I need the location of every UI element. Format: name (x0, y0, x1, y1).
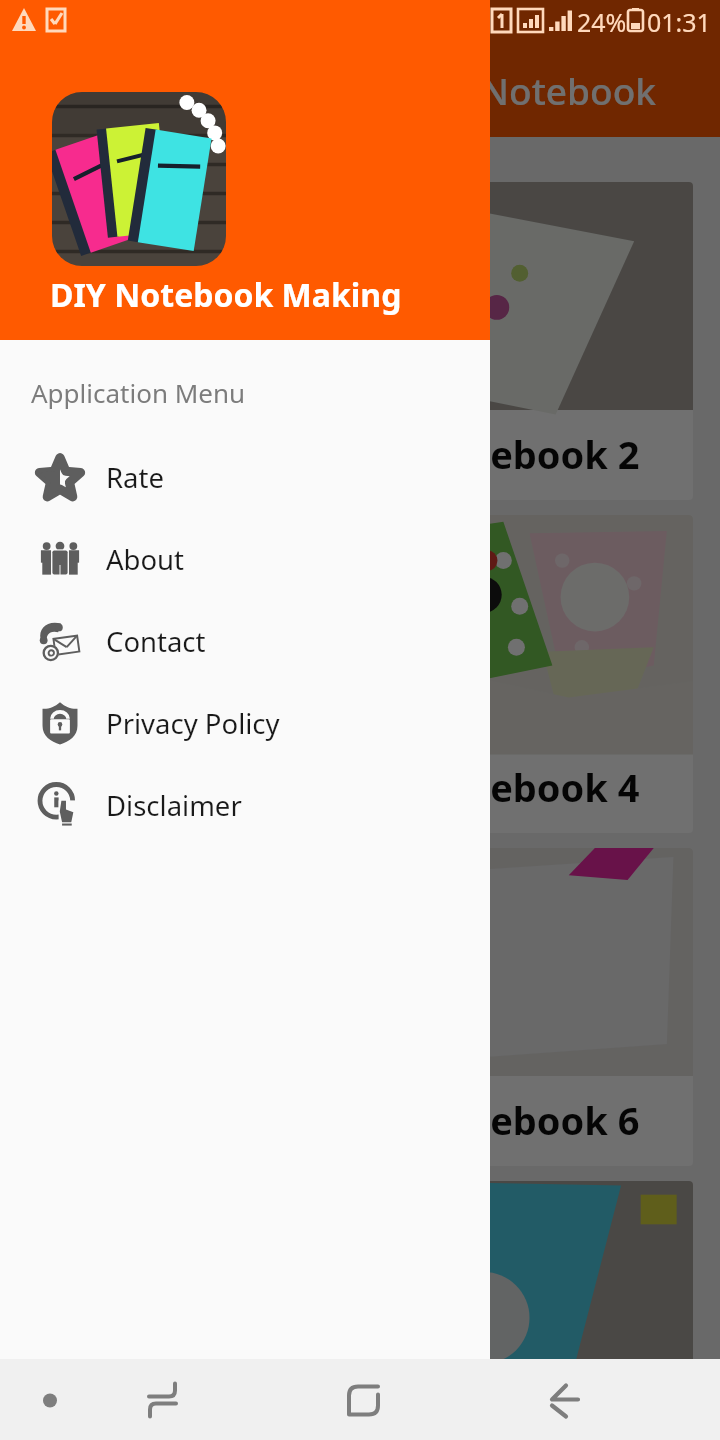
button[interactable]: Notebook 4 (366, 515, 693, 833)
button[interactable]: Notebook 2 (366, 182, 693, 500)
staticText: Application Menu (31, 375, 246, 410)
staticText: 01:31 (647, 5, 711, 39)
staticText: Contact (106, 623, 206, 660)
button[interactable]: About (0, 518, 490, 600)
button[interactable]: Disclaimer (0, 764, 490, 846)
staticText: Rate (106, 459, 164, 496)
button[interactable]: Notebook 7 (27, 1181, 353, 1440)
staticText: Notebook 4 (419, 761, 640, 813)
button[interactable]: Notebook 1 (27, 182, 353, 500)
button[interactable]: Menu (0, 1359, 100, 1440)
staticText: 24% (577, 5, 627, 39)
button[interactable]: Back (500, 1359, 630, 1440)
button[interactable]: Open navigation drawer (0, 42, 95, 137)
button[interactable]: Notebook 3 (27, 515, 353, 833)
staticText: Notebook 2 (419, 428, 640, 480)
staticText: Notebook 1 (80, 428, 301, 480)
staticText: Disclaimer (106, 787, 242, 824)
staticText: DIY Notebook Making (50, 273, 402, 317)
button[interactable]: Privacy Policy (0, 682, 490, 764)
button[interactable]: Rate (0, 436, 490, 518)
staticText: Privacy Policy (106, 705, 280, 742)
staticText: Notebook 3 (80, 761, 301, 813)
button[interactable]: Notebook 6 (366, 848, 693, 1166)
staticText: Notebook 6 (419, 1094, 640, 1146)
button[interactable]: Close navigation drawer (0, 0, 720, 1440)
button[interactable]: Recent apps (103, 1359, 223, 1440)
button[interactable]: Notebook 8 (366, 1181, 693, 1440)
staticText: DIY Notebook (409, 65, 656, 115)
button[interactable]: Home (300, 1359, 420, 1440)
button[interactable]: Contact (0, 600, 490, 682)
staticText: About (106, 541, 185, 578)
